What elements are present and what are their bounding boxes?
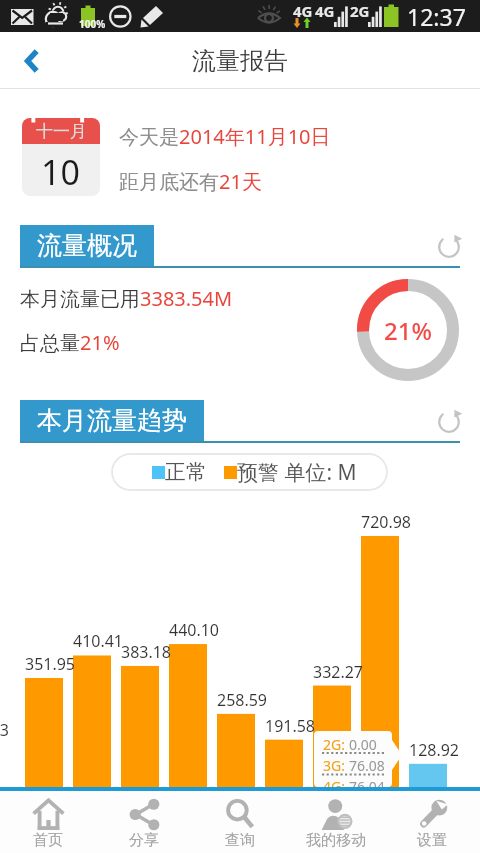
staticText: 283.43: [0, 719, 12, 741]
staticText: 2G:: [323, 735, 349, 754]
staticText: 10: [41, 149, 80, 195]
staticText: 0.00: [349, 735, 377, 754]
staticText: 2G: [350, 1, 370, 21]
button[interactable]: 正常: [111, 453, 388, 491]
staticText: 本月流量已用3383.54M: [20, 285, 233, 312]
staticText: 100%: [79, 17, 106, 31]
staticText: 332.27: [310, 661, 366, 683]
staticText: 383.18: [118, 641, 174, 663]
staticText: 十一月: [36, 121, 87, 142]
button[interactable]: Back: [0, 32, 64, 89]
staticText: 设置: [417, 831, 447, 850]
button[interactable]: 流量概况: [20, 225, 154, 266]
staticText: 今天是2014年11月10日: [119, 123, 331, 150]
staticText: 12:37: [407, 1, 466, 32]
staticText: 分享: [129, 831, 159, 850]
button[interactable]: Refresh: [432, 230, 466, 264]
staticText: 占总量21%: [20, 329, 120, 356]
staticText: 351.95: [22, 653, 78, 675]
staticText: 流量概况: [37, 230, 137, 261]
staticText: 我的移动: [306, 831, 366, 850]
button[interactable]: 我的移动: [288, 791, 384, 853]
staticText: 128.92: [406, 739, 462, 761]
staticText: 流量报告: [192, 46, 288, 76]
staticText: 3G:: [323, 756, 349, 775]
staticText: 76.04: [349, 777, 385, 787]
staticText: 查询: [225, 831, 255, 850]
staticText: 76.08: [349, 756, 385, 775]
staticText: 首页: [33, 831, 63, 850]
button[interactable]: 分享: [96, 791, 192, 853]
staticText: 4G: [315, 1, 335, 21]
staticText: 距月底还有21天: [119, 168, 262, 195]
staticText: 预警 单位: M: [237, 458, 357, 487]
staticText: 4G: [293, 1, 313, 21]
button[interactable]: 首页: [0, 791, 96, 853]
staticText: 440.10: [166, 619, 222, 641]
button[interactable]: Refresh: [432, 405, 466, 439]
staticText: 本月流量趋势: [37, 405, 187, 436]
staticText: 正常: [165, 459, 207, 485]
staticText: 191.58: [262, 715, 318, 737]
staticText: 21%: [384, 314, 432, 347]
staticText: 720.98: [358, 511, 414, 533]
button[interactable]: 设置: [384, 791, 480, 853]
staticText: 258.59: [214, 689, 270, 711]
button[interactable]: 查询: [192, 791, 288, 853]
button[interactable]: 本月流量趋势: [20, 400, 204, 441]
staticText: 4G:: [323, 777, 349, 787]
staticText: 410.41: [70, 630, 126, 652]
